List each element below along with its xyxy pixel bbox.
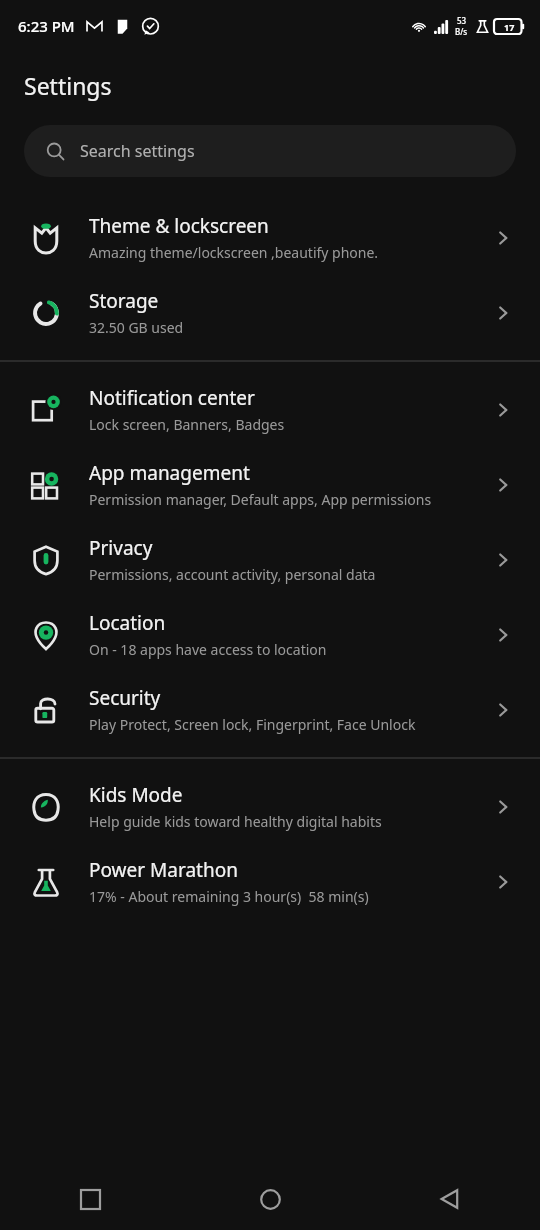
- staticText: B/s: [455, 26, 468, 37]
- staticText: Lock screen, Banners, Badges: [89, 415, 285, 434]
- staticText: Notification center: [89, 385, 255, 411]
- staticText: Help guide kids toward healthy digital h…: [89, 812, 382, 831]
- button[interactable]: Privacy: [0, 522, 540, 597]
- button[interactable]: Search settings: [24, 125, 516, 177]
- button[interactable]: Storage: [0, 275, 540, 350]
- staticText: Storage: [89, 288, 159, 314]
- button[interactable]: Location: [0, 597, 540, 672]
- button[interactable]: Recents: [0, 1168, 180, 1230]
- button[interactable]: App management: [0, 447, 540, 522]
- staticText: On - 18 apps have access to location: [89, 640, 327, 659]
- staticText: 53: [457, 15, 467, 26]
- staticText: Amazing theme/lockscreen ,beautify phone…: [89, 243, 379, 262]
- button[interactable]: Security: [0, 672, 540, 747]
- staticText: Security: [89, 685, 161, 711]
- staticText: Permission manager, Default apps, App pe…: [89, 490, 432, 509]
- button[interactable]: Kids Mode: [0, 769, 540, 844]
- button[interactable]: Back: [360, 1168, 540, 1230]
- staticText: Permissions, account activity, personal …: [89, 565, 376, 584]
- button[interactable]: Power Marathon: [0, 844, 540, 919]
- staticText: 6:23 PM: [18, 16, 75, 36]
- staticText: Privacy: [89, 535, 153, 561]
- staticText: Location: [89, 610, 166, 636]
- staticText: 17: [504, 21, 515, 33]
- staticText: Search settings: [80, 140, 195, 162]
- staticText: App management: [89, 460, 250, 486]
- staticText: Settings: [24, 70, 112, 101]
- staticText: Play Protect, Screen lock, Fingerprint, …: [89, 715, 416, 734]
- button[interactable]: Theme & lockscreen: [0, 200, 540, 275]
- button[interactable]: Home: [180, 1168, 360, 1230]
- staticText: 32.50 GB used: [89, 318, 184, 337]
- staticText: 17% - About remaining 3 hour(s) 58 min(s…: [89, 887, 369, 906]
- button[interactable]: Notification center: [0, 372, 540, 447]
- staticText: Kids Mode: [89, 782, 183, 808]
- staticText: Theme & lockscreen: [89, 213, 269, 239]
- staticText: Power Marathon: [89, 857, 238, 883]
